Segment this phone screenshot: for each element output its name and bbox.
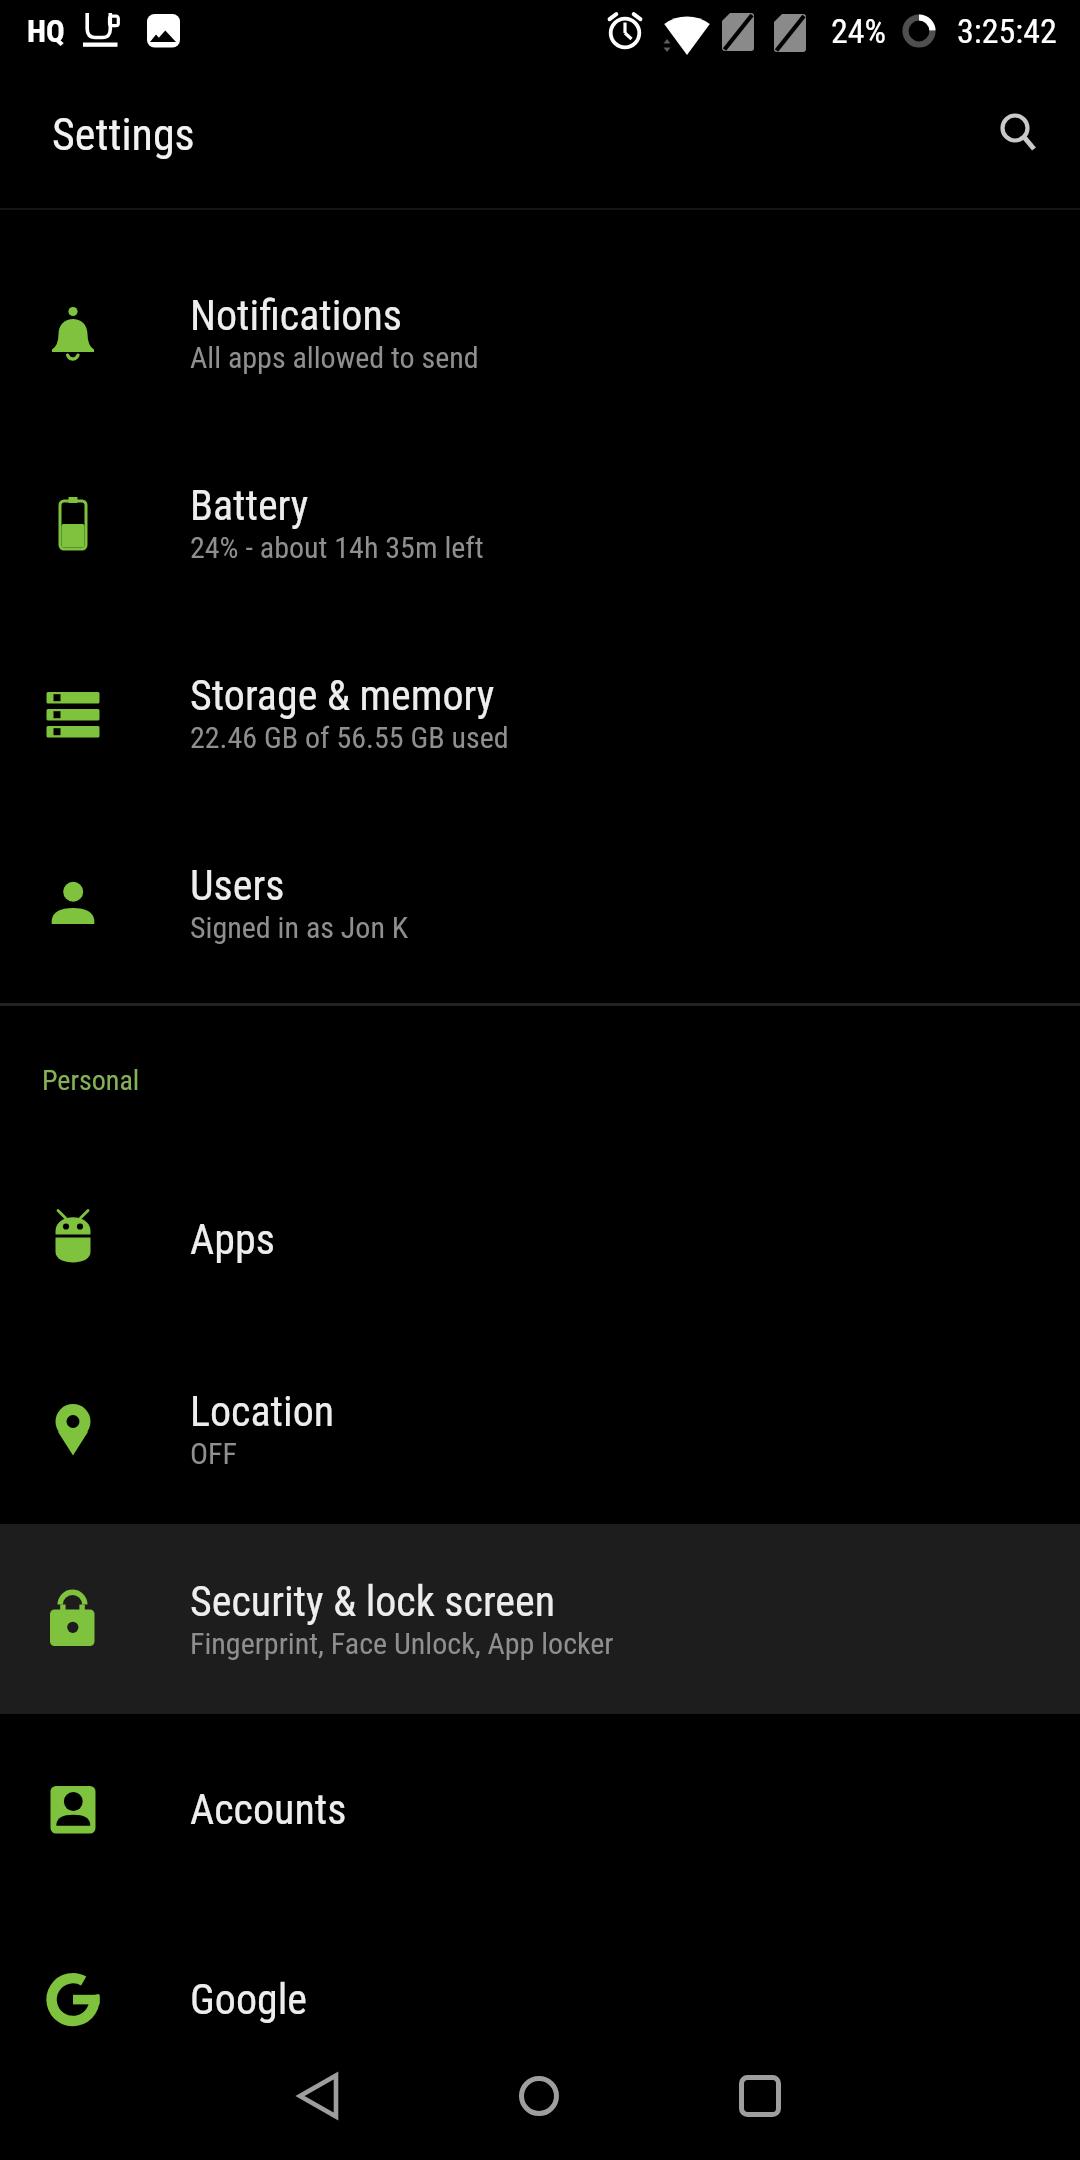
button[interactable]: [736, 2072, 784, 2120]
staticText: 24%: [831, 11, 887, 51]
staticText: All apps allowed to send: [190, 340, 479, 375]
button[interactable]: Accounts: [0, 1714, 1080, 1904]
staticText: Users: [190, 861, 285, 910]
button[interactable]: Battery: [0, 428, 1080, 618]
staticText: OFF: [190, 1436, 237, 1471]
staticText: Battery: [190, 481, 309, 530]
staticText: Settings: [52, 109, 195, 161]
staticText: Location: [190, 1387, 335, 1436]
staticText: Personal: [42, 1064, 140, 1097]
button[interactable]: Security & lock screen: [0, 1524, 1080, 1714]
staticText: Storage & memory: [190, 671, 495, 720]
button[interactable]: [988, 103, 1052, 167]
staticText: Fingerprint, Face Unlock, App locker: [190, 1626, 614, 1661]
button[interactable]: Location: [0, 1334, 1080, 1524]
button[interactable]: Google: [0, 1904, 1080, 2094]
staticText: Apps: [190, 1215, 275, 1264]
button[interactable]: [296, 2072, 344, 2120]
button[interactable]: [515, 2072, 563, 2120]
staticText: HQ: [27, 13, 65, 49]
staticText: Security & lock screen: [190, 1577, 556, 1626]
staticText: Notifications: [190, 291, 402, 340]
staticText: Signed in as Jon K: [190, 910, 409, 945]
button[interactable]: Users: [0, 808, 1080, 998]
button[interactable]: Apps: [0, 1144, 1080, 1334]
staticText: 3:25:42: [957, 11, 1057, 51]
staticText: Google: [190, 1975, 308, 2024]
button[interactable]: Storage & memory: [0, 618, 1080, 808]
button[interactable]: Notifications: [0, 238, 1080, 428]
staticText: 24% - about 14h 35m left: [190, 530, 484, 565]
staticText: 22.46 GB of 56.55 GB used: [190, 720, 509, 755]
staticText: Accounts: [190, 1785, 347, 1834]
